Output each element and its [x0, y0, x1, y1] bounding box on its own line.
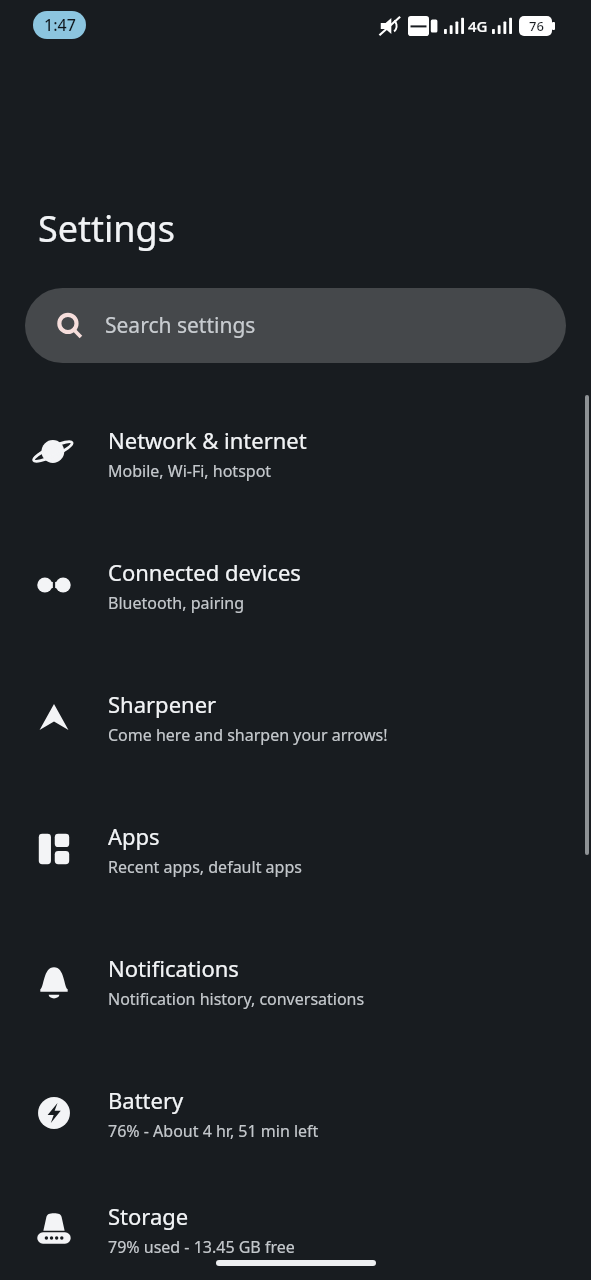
staticText: 76	[529, 17, 544, 35]
staticText: Sharpener	[108, 689, 217, 719]
staticText: Recent apps, default apps	[108, 856, 302, 878]
button[interactable]: Search settings	[25, 288, 566, 363]
staticText: Storage	[108, 1201, 189, 1231]
staticText: 76% - About 4 hr, 51 min left	[108, 1120, 319, 1142]
staticText: Battery	[108, 1085, 184, 1115]
staticText: 1:47	[44, 14, 76, 36]
staticText: Notifications	[108, 953, 239, 983]
staticText: Connected devices	[108, 557, 301, 587]
button[interactable]: Storage	[0, 1179, 591, 1280]
staticText: Come here and sharpen your arrows!	[108, 724, 388, 746]
button[interactable]: Apps	[0, 783, 591, 915]
staticText: 4G	[468, 16, 488, 36]
staticText: Search settings	[105, 311, 256, 340]
staticText: Bluetooth, pairing	[108, 592, 245, 614]
staticText: 79% used - 13.45 GB free	[108, 1236, 295, 1258]
staticText: Notification history, conversations	[108, 988, 365, 1010]
button[interactable]: Notifications	[0, 915, 591, 1047]
button[interactable]: Battery	[0, 1047, 591, 1179]
button[interactable]: Network & internet	[0, 387, 591, 519]
button[interactable]: Sharpener	[0, 651, 591, 783]
staticText: Apps	[108, 821, 160, 851]
staticText: Settings	[38, 204, 175, 253]
staticText: Mobile, Wi-Fi, hotspot	[108, 460, 272, 482]
staticText: Network & internet	[108, 425, 307, 455]
button[interactable]: Connected devices	[0, 519, 591, 651]
